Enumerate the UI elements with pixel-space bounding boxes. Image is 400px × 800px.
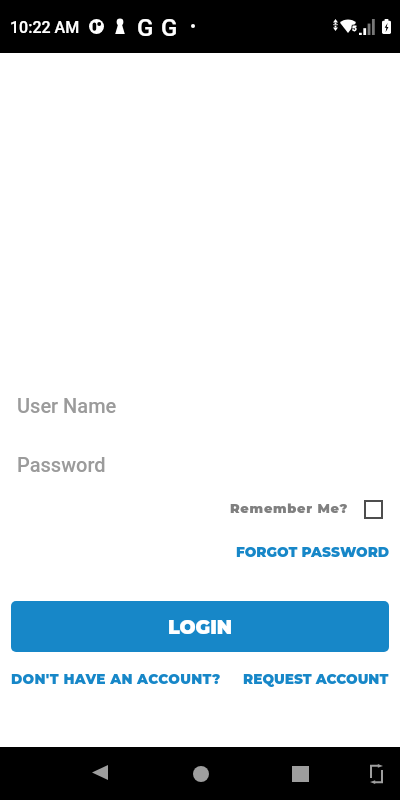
staticText: 5 <box>351 25 356 34</box>
button[interactable]: LOGIN <box>11 601 389 652</box>
staticText: 5 <box>353 23 358 32</box>
staticText: 5 <box>352 24 357 33</box>
staticText: 5 <box>351 23 356 32</box>
staticText: Remember Me? <box>230 500 348 516</box>
staticText: 5 <box>353 24 358 33</box>
button[interactable]: REQUEST ACCOUNT <box>243 667 400 692</box>
button[interactable]: Remember Me? <box>230 496 400 523</box>
staticText: 10:22 AM <box>10 18 80 37</box>
button[interactable]: DON'T HAVE AN ACCOUNT? <box>0 667 221 692</box>
button[interactable]: Home <box>185 758 216 789</box>
button[interactable]: Password <box>0 441 400 485</box>
staticText: Password <box>17 453 106 476</box>
staticText: 5 <box>352 25 357 34</box>
staticText: 5 <box>353 25 358 34</box>
button[interactable]: Back <box>84 758 115 789</box>
staticText: 5 <box>352 23 357 32</box>
staticText: G <box>137 14 154 42</box>
staticText: G <box>161 14 178 42</box>
staticText: User Name <box>17 394 117 417</box>
staticText: 5 <box>351 24 356 33</box>
button[interactable]: Recent apps <box>285 758 316 789</box>
staticText: LOGIN <box>168 616 233 639</box>
button[interactable]: FORGOT PASSWORD <box>236 540 400 565</box>
button[interactable]: User Name <box>0 382 400 426</box>
button[interactable]: Rotate screen <box>362 760 390 788</box>
